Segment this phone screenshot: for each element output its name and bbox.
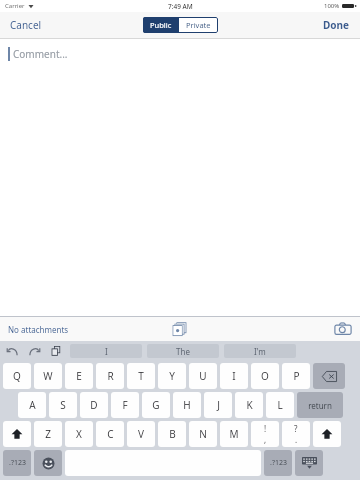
staticText: The <box>176 346 190 357</box>
staticText: E <box>76 369 82 383</box>
button[interactable]: H <box>173 392 201 418</box>
button[interactable]: Public <box>143 17 179 33</box>
button[interactable]: Q <box>3 363 31 389</box>
staticText: V <box>138 427 144 441</box>
button[interactable]: Shift <box>313 421 341 447</box>
button[interactable]: L <box>266 392 294 418</box>
staticText: No attachments <box>8 324 69 335</box>
staticText: . <box>295 434 298 445</box>
staticText: Private <box>186 20 211 30</box>
button[interactable]: I'm <box>224 344 296 358</box>
staticText: B <box>169 427 176 441</box>
button[interactable]: I <box>70 344 142 358</box>
button[interactable]: V <box>127 421 155 447</box>
staticText: 100% <box>324 2 340 10</box>
button[interactable]: J <box>204 392 232 418</box>
staticText: I'm <box>254 346 266 357</box>
staticText: K <box>246 398 253 412</box>
button[interactable]: Add photo <box>164 317 196 341</box>
staticText: return <box>308 400 332 411</box>
staticText: P <box>293 369 300 383</box>
button[interactable]: P <box>282 363 310 389</box>
staticText: F <box>122 398 128 412</box>
staticText: H <box>183 398 191 412</box>
staticText: O <box>261 369 269 383</box>
button[interactable]: C <box>96 421 124 447</box>
button[interactable]: S <box>49 392 77 418</box>
button[interactable]: No attachments <box>0 317 77 341</box>
button[interactable]: Done <box>313 12 360 38</box>
button[interactable]: The <box>147 344 219 358</box>
staticText: M <box>229 427 239 441</box>
button[interactable]: I <box>220 363 248 389</box>
button[interactable]: F <box>111 392 139 418</box>
staticText: 7:49 AM <box>168 2 193 11</box>
button[interactable]: D <box>80 392 108 418</box>
staticText: X <box>76 427 82 441</box>
button[interactable]: .?123 <box>264 450 292 476</box>
button[interactable]: Private <box>179 17 218 33</box>
staticText: S <box>60 398 66 412</box>
staticText: T <box>138 369 144 383</box>
staticText: , <box>264 434 267 445</box>
button[interactable]: O <box>251 363 279 389</box>
button[interactable]: Cancel <box>0 12 52 38</box>
button[interactable]: R <box>96 363 124 389</box>
button[interactable]: .?123 <box>3 450 31 476</box>
staticText: J <box>217 398 220 412</box>
staticText: I <box>232 369 236 383</box>
staticText: ? <box>294 423 298 434</box>
button[interactable]: B <box>158 421 186 447</box>
staticText: Comment... <box>13 47 68 61</box>
button[interactable]: Camera <box>326 317 360 341</box>
staticText: Z <box>45 427 51 441</box>
button[interactable]: A <box>18 392 46 418</box>
staticText: U <box>199 369 207 383</box>
button[interactable]: X <box>65 421 93 447</box>
staticText: ! <box>264 423 267 434</box>
button[interactable]: K <box>235 392 263 418</box>
button[interactable]: ! <box>251 421 279 447</box>
button[interactable]: Emoji <box>34 450 62 476</box>
staticText: Cancel <box>10 18 42 32</box>
button[interactable]: Hide keyboard <box>295 450 323 476</box>
button[interactable]: Shift <box>3 421 31 447</box>
button[interactable]: Undo <box>4 343 20 359</box>
button[interactable]: E <box>65 363 93 389</box>
button[interactable]: M <box>220 421 248 447</box>
staticText: L <box>277 398 283 412</box>
button[interactable]: Redo <box>26 343 42 359</box>
button[interactable]: ? <box>282 421 310 447</box>
button[interactable]: N <box>189 421 217 447</box>
button[interactable]: return <box>297 392 343 418</box>
staticText: .?123 <box>270 458 287 468</box>
button[interactable]: W <box>34 363 62 389</box>
button[interactable]: Comment... <box>0 39 360 316</box>
staticText: Carrier <box>5 2 25 10</box>
button[interactable]: Y <box>158 363 186 389</box>
button[interactable]: Z <box>34 421 62 447</box>
staticText: A <box>29 398 36 412</box>
staticText: G <box>152 398 160 412</box>
staticText: Q <box>13 369 21 383</box>
button[interactable]: Backspace <box>313 363 345 389</box>
button[interactable]: U <box>189 363 217 389</box>
staticText: I <box>105 346 108 357</box>
staticText: Public <box>150 20 172 30</box>
staticText: D <box>90 398 98 412</box>
button[interactable]: T <box>127 363 155 389</box>
staticText: W <box>43 369 53 383</box>
button[interactable]: Paste <box>48 343 64 359</box>
button[interactable]: G <box>142 392 170 418</box>
staticText: Done <box>323 18 350 32</box>
staticText: R <box>107 369 114 383</box>
staticText: N <box>199 427 207 441</box>
staticText: Y <box>169 369 175 383</box>
staticText: C <box>107 427 114 441</box>
staticText: .?123 <box>9 458 26 468</box>
